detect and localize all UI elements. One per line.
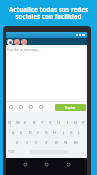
button[interactable]: Nav <box>23 162 28 167</box>
button[interactable]: C <box>34 137 39 147</box>
button[interactable]: Z <box>15 137 20 147</box>
staticText: L <box>78 130 81 135</box>
button[interactable]: P <box>81 117 86 127</box>
button[interactable]: L <box>77 127 82 137</box>
staticText: D <box>29 130 32 135</box>
button[interactable]: Nav <box>44 162 49 167</box>
staticText: K <box>70 130 73 135</box>
button[interactable]: F <box>36 127 41 137</box>
staticText: M <box>74 140 78 145</box>
staticText: O <box>74 120 78 125</box>
staticText: Enviar <box>65 105 76 110</box>
staticText: Escribe tu mensaje... <box>7 47 41 52</box>
button[interactable]: I <box>65 117 70 127</box>
button[interactable]: D <box>28 127 33 137</box>
staticText: Q <box>8 120 12 125</box>
button[interactable]: E <box>23 117 28 127</box>
staticText: ?123 <box>8 150 15 154</box>
button[interactable]: Tool <box>17 103 25 111</box>
button[interactable]: Enviar <box>55 104 86 111</box>
button[interactable]: K <box>69 127 74 137</box>
button[interactable]: Q <box>7 117 12 127</box>
staticText: G <box>45 130 48 135</box>
staticText: E <box>24 120 27 125</box>
button[interactable]: R <box>32 117 37 127</box>
button[interactable]: S <box>19 127 24 137</box>
button[interactable]: T <box>40 117 45 127</box>
staticText: U <box>57 120 60 125</box>
staticText: R <box>33 120 36 125</box>
button[interactable]: Profile <box>21 39 27 45</box>
button[interactable]: J <box>61 127 66 137</box>
button[interactable]: W <box>15 117 20 127</box>
staticText: I <box>67 120 69 125</box>
staticText: J <box>63 130 65 135</box>
button[interactable]: H <box>52 127 57 137</box>
staticText: S <box>20 130 23 135</box>
button[interactable]: Y <box>48 117 53 127</box>
staticText: H <box>53 130 56 135</box>
button[interactable]: X <box>25 137 30 147</box>
button[interactable]: Nav <box>66 162 71 167</box>
button[interactable]: N <box>63 137 68 147</box>
button[interactable]: Tool <box>7 103 15 111</box>
button[interactable]: M <box>73 137 78 147</box>
button[interactable]: Tool <box>37 103 45 111</box>
staticText: Z <box>16 140 19 145</box>
staticText: B <box>55 140 58 145</box>
staticText: P <box>82 120 85 125</box>
button[interactable]: Tool <box>27 103 35 111</box>
button[interactable]: Profile <box>7 39 13 45</box>
button[interactable]: U <box>56 117 61 127</box>
staticText: V <box>45 140 48 145</box>
staticText: Y <box>49 120 52 125</box>
button[interactable]: V <box>44 137 49 147</box>
staticText: T <box>41 120 44 125</box>
button[interactable]: A <box>11 127 16 137</box>
button[interactable]: B <box>54 137 59 147</box>
staticText: C <box>35 140 38 145</box>
staticText: F <box>37 130 40 135</box>
staticText: Actualice todas sus redes sociales con f… <box>0 5 97 21</box>
button[interactable]: Profile <box>14 39 20 45</box>
staticText: X <box>26 140 29 145</box>
button[interactable]: G <box>44 127 49 137</box>
staticText: A <box>12 130 15 135</box>
staticText: W <box>16 120 20 125</box>
button[interactable]: O <box>73 117 78 127</box>
staticText: N <box>64 140 68 145</box>
staticText: . <box>83 150 85 155</box>
